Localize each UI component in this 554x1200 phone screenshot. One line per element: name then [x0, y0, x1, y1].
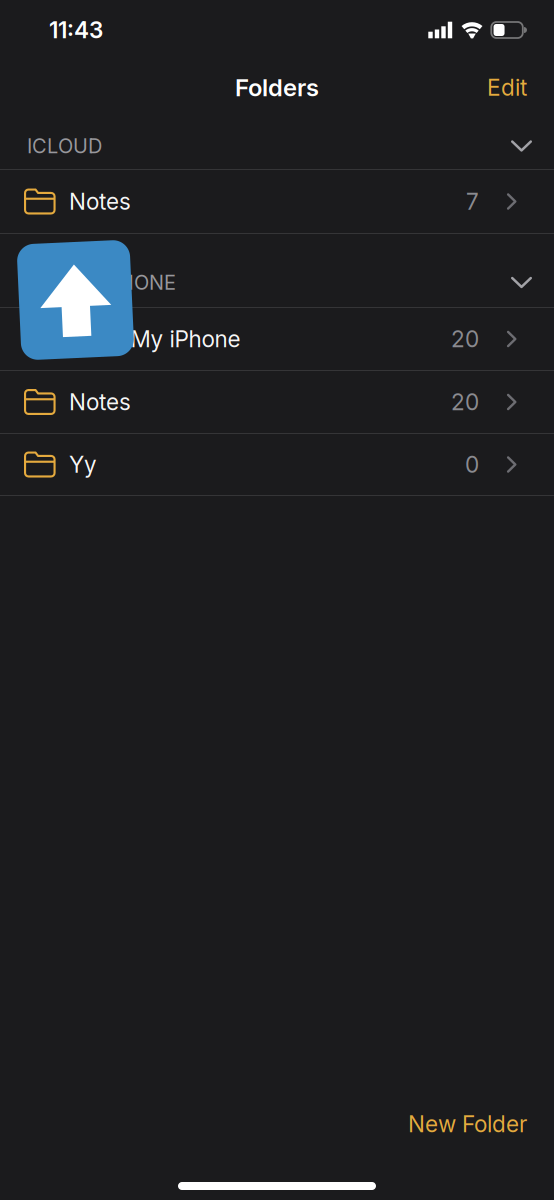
staticText: 7 — [466, 188, 479, 215]
staticText: 0 — [465, 451, 479, 478]
staticText: 20 — [451, 388, 479, 416]
staticText: Edit — [487, 74, 527, 101]
staticText: Notes — [69, 188, 131, 215]
button[interactable]: ON MY IPHONE — [0, 234, 554, 308]
button[interactable]: Edit — [487, 65, 554, 110]
button[interactable]: Notes — [0, 371, 554, 434]
staticText: ON MY IPHONE — [27, 270, 176, 295]
staticText: 20 — [451, 325, 479, 353]
button[interactable]: Notes My iPhone — [0, 308, 554, 371]
button[interactable]: ICLOUD — [0, 97, 554, 170]
staticText: ICLOUD — [27, 134, 102, 158]
button[interactable]: Notes — [0, 170, 554, 234]
staticText: 11:43 — [49, 16, 103, 44]
staticText: Notes — [69, 388, 131, 416]
staticText: Notes My iPhone — [63, 325, 241, 353]
button[interactable]: New Folder — [408, 1098, 554, 1150]
staticText: Folders — [235, 73, 319, 102]
button[interactable]: Yy — [0, 434, 554, 496]
staticText: New Folder — [408, 1110, 527, 1138]
staticText: Yy — [69, 451, 97, 478]
